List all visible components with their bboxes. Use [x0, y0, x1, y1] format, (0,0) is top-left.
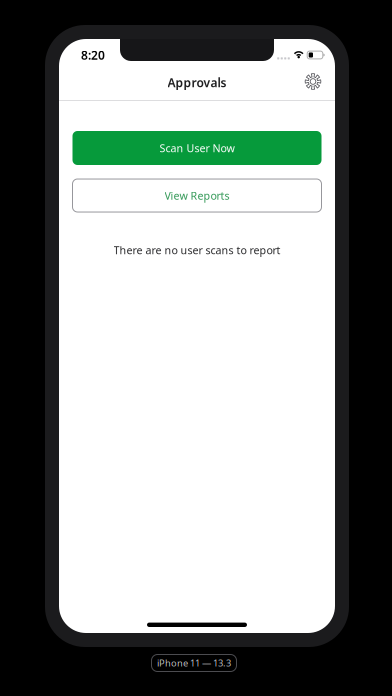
staticText: There are no user scans to report	[113, 243, 280, 257]
button[interactable]: Settings	[298, 71, 328, 100]
staticText: 8:20	[81, 47, 105, 63]
staticText: Approvals	[167, 74, 226, 90]
button[interactable]: View Reports	[72, 179, 321, 212]
staticText: View Reports	[164, 188, 229, 203]
staticText: iPhone 11 — 13.3	[157, 657, 231, 669]
staticText: Scan User Now	[159, 141, 234, 155]
button[interactable]: Scan User Now	[72, 131, 321, 165]
